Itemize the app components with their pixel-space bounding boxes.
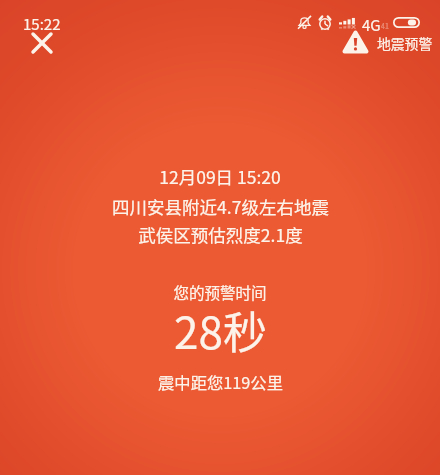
staticText: 12月09日 15:20 — [159, 164, 281, 189]
staticText: 15:22 — [23, 13, 61, 35]
staticText: 4G — [362, 14, 381, 36]
staticText: 四川安县附近4.7级左右地震 — [112, 194, 329, 219]
staticText: 您的预警时间 — [173, 281, 267, 303]
button[interactable]: Close — [24, 25, 60, 61]
staticText: 41 — [381, 21, 389, 31]
staticText: 震中距您119公里 — [158, 370, 283, 394]
staticText: 武侯区预估烈度2.1度 — [138, 222, 303, 247]
staticText: 28秒 — [174, 298, 267, 362]
button[interactable]: 地震预警 — [342, 30, 433, 54]
staticText: 地震预警 — [377, 33, 433, 53]
